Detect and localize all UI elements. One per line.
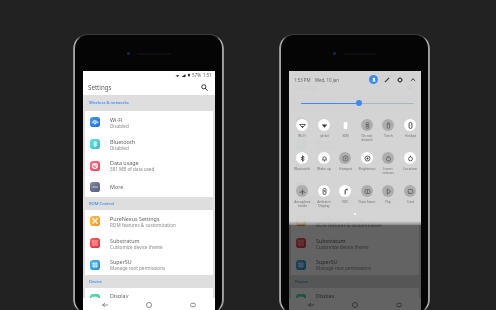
button[interactable]: Display — [85, 288, 213, 309]
staticText: Bluetooth — [110, 138, 136, 145]
button[interactable]: Wi-Fi — [290, 119, 314, 138]
staticText: Hotspot — [339, 166, 352, 171]
staticText: Wed, 10 Jan — [315, 77, 340, 83]
button[interactable]: Recents — [392, 298, 406, 310]
staticText: Display — [316, 292, 335, 299]
staticText: Ambient Display — [317, 199, 331, 208]
staticText: ROM Control — [89, 201, 115, 207]
staticText: 57% — [192, 72, 201, 78]
staticText: 381 MB of data used — [316, 166, 361, 172]
button[interactable]: Bluetooth — [290, 152, 314, 171]
staticText: Data Saver — [358, 199, 376, 204]
staticText: Hotbat — [405, 133, 416, 138]
staticText: Data usage — [316, 159, 345, 166]
staticText: SuperSU — [110, 258, 132, 265]
staticText: Aeroplane mode — [294, 199, 311, 208]
staticText: NFC — [342, 199, 349, 204]
button[interactable]: Back — [98, 298, 112, 310]
button[interactable]: Search — [197, 80, 211, 94]
button[interactable]: SuperSU — [85, 254, 213, 275]
staticText: Device — [295, 279, 308, 285]
button[interactable]: Ambient Display — [312, 185, 336, 208]
staticText: SuperSU — [316, 258, 338, 265]
staticText: Device — [89, 279, 102, 285]
button[interactable]: Jarkd — [312, 119, 336, 138]
button[interactable]: Cast — [398, 185, 422, 204]
button[interactable]: Settings — [395, 75, 404, 84]
button[interactable]: Home — [348, 298, 362, 310]
staticText: Settings — [88, 83, 112, 91]
button[interactable]: Data usage — [291, 155, 419, 176]
button[interactable]: Back — [304, 298, 318, 310]
staticText: Disabled — [110, 123, 129, 129]
button[interactable]: Wi-Fi — [291, 111, 419, 133]
staticText: ROM Control — [295, 201, 321, 207]
button[interactable]: Flip — [376, 185, 400, 204]
staticText: 1:53 PM — [294, 77, 311, 83]
staticText: Cast — [407, 199, 414, 204]
button[interactable]: Substratum — [85, 232, 213, 254]
staticText: 57% — [398, 72, 407, 78]
staticText: Wireless & networks — [89, 100, 129, 106]
staticText: 1:51 — [203, 72, 212, 78]
button[interactable]: Aeroplane mode — [290, 185, 314, 208]
staticText: Wi-Fi — [316, 116, 329, 123]
staticText: Substratum — [316, 237, 346, 244]
staticText: Data usage — [110, 159, 139, 166]
staticText: Manage root permissions — [316, 265, 372, 271]
button[interactable]: PureNexus Settings — [291, 210, 419, 232]
button[interactable]: Collapse — [408, 75, 417, 84]
staticText: Bluetooth — [294, 166, 310, 171]
button[interactable]: Bluetooth — [291, 133, 419, 155]
staticText: Disabled — [110, 145, 129, 151]
button[interactable]: Wi-Fi — [85, 111, 213, 133]
staticText: PureNexus Settings — [110, 215, 160, 222]
staticText: Disabled — [316, 123, 335, 129]
staticText: Invert colours — [382, 166, 394, 175]
button[interactable]: More — [85, 176, 213, 197]
button[interactable]: Data Saver — [355, 185, 379, 204]
staticText: Jarkd — [320, 133, 329, 138]
staticText: Substratum — [110, 237, 140, 244]
button[interactable]: SuperSU — [291, 254, 419, 275]
button[interactable]: Search — [403, 80, 417, 94]
button[interactable]: Hotspot — [333, 152, 357, 171]
button[interactable]: Substratum — [291, 232, 419, 254]
button[interactable]: Recents — [186, 298, 200, 310]
button[interactable]: Data usage — [85, 155, 213, 176]
button[interactable]: More — [291, 176, 419, 197]
staticText: Wireless & networks — [295, 100, 335, 106]
button[interactable]: Home — [142, 298, 156, 310]
staticText: SIM — [342, 133, 349, 138]
staticText: More — [316, 183, 330, 190]
staticText: More — [110, 183, 124, 190]
staticText: Display — [110, 292, 129, 299]
button[interactable]: Location — [398, 152, 422, 171]
staticText: Wake up — [317, 166, 331, 171]
button[interactable]: Bluetooth — [85, 133, 213, 155]
button[interactable]: Hotbat — [398, 119, 422, 138]
button[interactable]: NFC — [333, 185, 357, 204]
staticText: 381 MB of data used — [110, 166, 155, 172]
button[interactable]: Wake up — [312, 152, 336, 171]
button[interactable]: Do not disturb — [355, 119, 379, 142]
button[interactable]: Brightness — [355, 152, 379, 171]
button[interactable]: User — [369, 75, 378, 84]
button[interactable]: PureNexus Settings — [85, 210, 213, 232]
button[interactable]: Edit — [382, 75, 391, 84]
staticText: ROM features & customization — [316, 222, 382, 228]
button[interactable]: Display — [291, 288, 419, 309]
staticText: ROM features & customization — [110, 222, 176, 228]
staticText: Wi-Fi — [110, 116, 123, 123]
button[interactable]: Torch — [376, 119, 400, 138]
staticText: Torch — [384, 133, 393, 138]
button[interactable]: SIM — [333, 119, 357, 138]
button[interactable]: Invert colours — [376, 152, 400, 175]
